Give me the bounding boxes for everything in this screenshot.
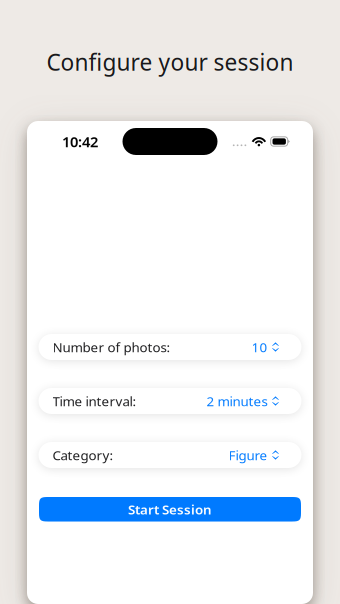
button[interactable]: Start Session [39,497,301,521]
staticText: Time interval: [52,392,136,410]
staticText: Start Session [128,500,212,518]
button[interactable]: Time interval: [38,388,301,414]
staticText: Category: [52,446,113,464]
staticText: 2 minutes [206,392,267,410]
button[interactable]: Number of photos: [38,334,301,360]
button[interactable]: Category: [38,442,301,468]
staticText: Number of photos: [52,338,170,356]
staticText: 10 [251,338,267,356]
staticText: 10:42 [62,132,98,151]
staticText: Configure your session [46,47,293,77]
staticText: Figure [228,446,267,464]
